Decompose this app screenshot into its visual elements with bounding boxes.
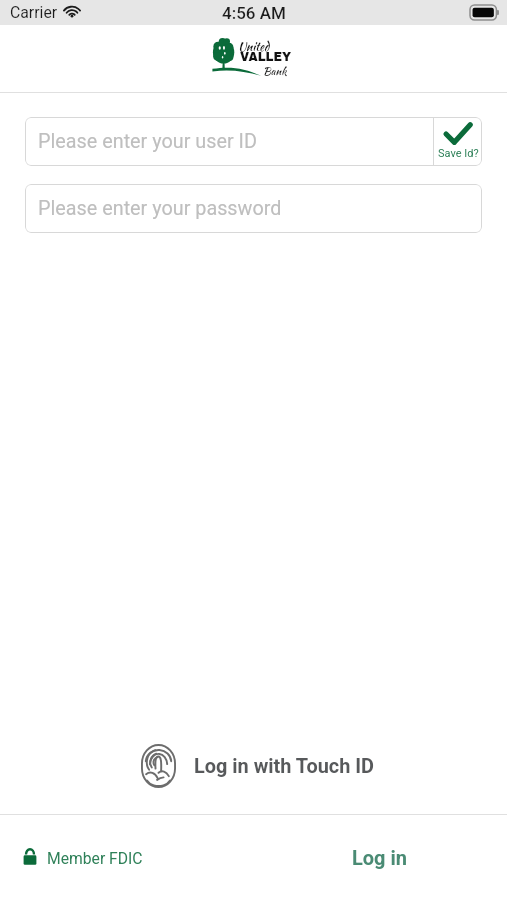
staticText: Please enter your user ID [38,130,433,153]
staticText: Log in [352,846,408,869]
button[interactable]: Log in with Touch ID [0,741,507,791]
staticText: VALLEY [240,51,292,64]
staticText: Member FDIC [47,849,143,867]
button[interactable]: Please enter your password [25,184,482,233]
staticText: Save Id? [438,147,479,160]
staticText: Carrier [10,3,58,22]
button[interactable]: Log in [352,846,408,869]
button[interactable]: Save Id [434,117,482,166]
staticText: 4:56 AM [222,3,286,23]
staticText: Please enter your password [38,197,282,220]
button[interactable]: Member FDIC [22,848,143,867]
button[interactable]: Please enter your user ID [25,117,482,166]
staticText: Bank [263,64,287,79]
staticText: Log in with Touch ID [194,755,375,778]
staticText: United [238,38,270,55]
